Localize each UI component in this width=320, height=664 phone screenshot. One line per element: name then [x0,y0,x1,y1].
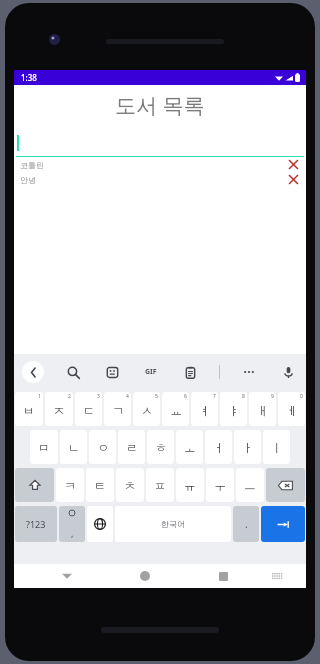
button[interactable]: Home [106,564,184,588]
button[interactable]: Change language [87,506,113,542]
staticText: 0 [300,393,303,400]
button[interactable] [16,125,304,157]
staticText: 6 [184,393,187,400]
button[interactable]: Clipboard [180,362,200,382]
button[interactable]: ㄴ [60,430,87,464]
staticText: ㅛ [170,403,182,418]
staticText: ㅗ [184,440,196,455]
button[interactable]: 4 [104,392,131,426]
button[interactable]: ㅏ [234,430,261,464]
staticText: 1 [38,393,41,400]
staticText: ㅣ [271,440,283,455]
staticText: ㄱ [112,403,124,418]
button[interactable]: Voice input [278,362,298,382]
button[interactable]: ㅗ [176,430,203,464]
staticText: ㅈ [53,403,65,418]
button[interactable]: 6 [162,392,189,426]
staticText: 2 [68,393,71,400]
staticText: ㅅ [141,403,153,418]
button[interactable]: 3 [75,392,102,426]
button[interactable]: ㅁ [30,430,58,464]
button[interactable]: Emoji and comma [59,506,85,542]
button[interactable]: Back [22,361,44,383]
staticText: ㅇ [97,440,109,455]
staticText: ㅓ [213,440,225,455]
button[interactable]: ㄹ [118,430,145,464]
staticText: ㅐ [257,403,269,418]
staticText: GIF [145,367,157,377]
button[interactable]: ?123 [15,506,57,542]
button[interactable]: 0 [278,392,305,426]
staticText: ㅍ [154,478,166,493]
button[interactable]: More options [239,362,259,382]
staticText: ㅎ [155,440,167,455]
button[interactable]: . [233,506,259,542]
staticText: ㅠ [184,478,196,493]
staticText: 9 [271,393,274,400]
staticText: 7 [213,393,216,400]
staticText: ㅋ [64,478,76,493]
staticText: ㅂ [23,403,35,418]
button[interactable]: ㅓ [205,430,232,464]
staticText: 3 [97,393,100,400]
staticText: 한국어 [161,519,185,529]
button[interactable]: ㅡ [236,468,264,502]
button[interactable]: ㅊ [116,468,144,502]
staticText: . [245,517,248,531]
button[interactable]: Search [63,362,83,382]
staticText: 5 [155,393,158,400]
button[interactable]: ㅠ [176,468,204,502]
button[interactable]: 코틀린 [14,157,306,172]
button[interactable]: Switch keyboard [262,564,292,588]
button[interactable]: 8 [220,392,247,426]
button[interactable]: 1 [15,392,43,426]
button[interactable]: Stickers [102,362,122,382]
staticText: ㅌ [94,478,106,493]
button[interactable]: 9 [249,392,276,426]
staticText: ㅕ [199,403,211,418]
button[interactable]: 7 [191,392,218,426]
button[interactable]: GIF [141,362,161,382]
staticText: 안녕 [20,175,36,185]
staticText: , [71,527,74,539]
button[interactable]: Delete 코틀린 [287,158,300,171]
button[interactable]: Backspace [266,468,305,502]
staticText: 코틀린 [20,160,44,170]
button[interactable]: 한국어 [115,506,231,542]
staticText: ㄴ [68,440,80,455]
button[interactable]: 5 [133,392,160,426]
staticText: ㅏ [242,440,254,455]
staticText: ㅡ [244,478,256,493]
staticText: 4 [126,393,129,400]
button[interactable]: Shift [15,468,54,502]
button[interactable]: Back [28,564,106,588]
button[interactable]: 안녕 [14,172,306,187]
staticText: 8 [242,393,245,400]
button[interactable]: Enter [261,506,305,542]
staticText: ㅊ [124,478,136,493]
button[interactable]: ㅍ [146,468,174,502]
button[interactable]: Recent apps [184,564,262,588]
staticText: ㅔ [286,403,298,418]
staticText: ㄷ [83,403,95,418]
button[interactable]: Delete 안녕 [287,173,300,186]
staticText: 1:38 [21,72,37,83]
staticText: ㅁ [38,440,50,455]
button[interactable]: ㅎ [147,430,174,464]
button[interactable]: ㅣ [263,430,290,464]
button[interactable]: ㅋ [56,468,84,502]
button[interactable]: 2 [45,392,73,426]
button[interactable]: ㅜ [206,468,234,502]
staticText: ?123 [26,518,46,530]
staticText: 도서 목록 [115,91,205,120]
staticText: ㅑ [228,403,240,418]
staticText: ㅜ [214,478,226,493]
staticText: ㄹ [126,440,138,455]
button[interactable]: ㅇ [89,430,116,464]
button[interactable]: ㅌ [86,468,114,502]
